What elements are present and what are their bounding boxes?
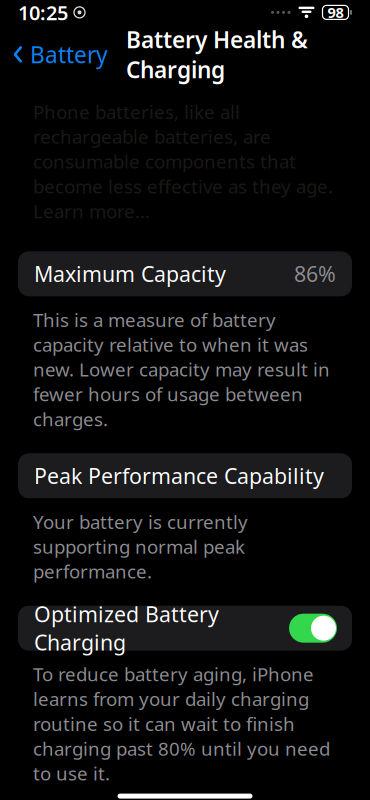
staticText: Peak Performance Capability (34, 462, 324, 490)
staticText: Battery (30, 39, 108, 69)
staticText: 10:25 (18, 0, 68, 26)
staticText: 86% (294, 260, 336, 288)
button[interactable]: Battery (8, 32, 112, 76)
button[interactable]: Peak Performance Capability (18, 453, 352, 498)
staticText: Battery Health & Charging (126, 24, 308, 84)
staticText: To reduce battery aging, iPhone learns f… (33, 662, 330, 786)
staticText: Phone batteries, like all rechargeable b… (33, 99, 333, 223)
staticText: 98 (327, 3, 343, 22)
button[interactable]: Maximum Capacity (18, 251, 352, 296)
button[interactable]: Optimized Battery Charging (18, 606, 352, 651)
staticText: Optimized Battery Charging (34, 600, 219, 656)
staticText: This is a measure of battery capacity re… (33, 307, 330, 431)
staticText: Your battery is currently supporting nor… (33, 509, 248, 584)
staticText: Maximum Capacity (34, 260, 226, 288)
